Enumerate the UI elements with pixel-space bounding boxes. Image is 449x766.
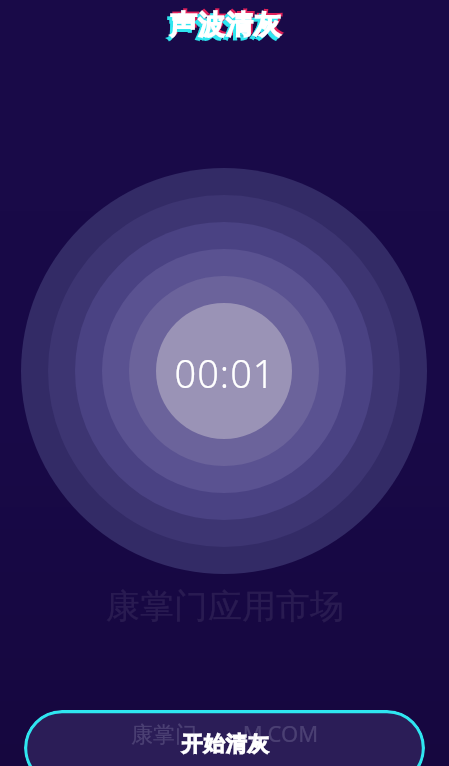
- staticText: 声波清灰: [171, 6, 283, 40]
- staticText: 00:01: [174, 347, 276, 399]
- staticText: 开始清灰: [181, 731, 269, 757]
- button[interactable]: 开始清灰: [24, 710, 425, 766]
- staticText: 声波清灰: [169, 8, 281, 42]
- staticText: 康掌门应用市场: [106, 585, 344, 628]
- staticText: 声波清灰: [166, 11, 278, 45]
- staticText: 康掌门 M.COM: [131, 718, 319, 748]
